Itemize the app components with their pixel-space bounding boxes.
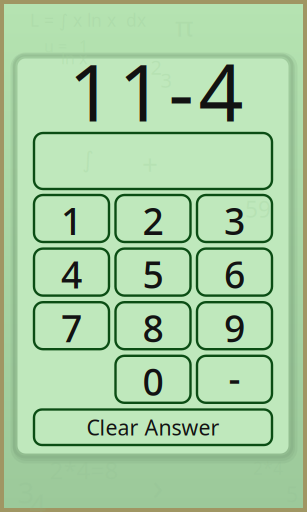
staticText: Clear Answer (86, 413, 219, 441)
button[interactable]: 0 (115, 356, 190, 403)
staticText: 2 (150, 54, 161, 80)
staticText: 8 (142, 303, 163, 352)
button[interactable]: 9 (197, 302, 272, 349)
button[interactable]: Clear Answer (34, 409, 272, 445)
button[interactable]: 3 (197, 195, 272, 242)
staticText: 2 (142, 196, 163, 245)
staticText: 6 (224, 249, 245, 299)
staticText: 9 (224, 303, 245, 352)
button[interactable]: 5 (115, 249, 190, 296)
button[interactable]: 7 (34, 302, 109, 349)
staticText: 0 (142, 356, 163, 406)
staticText: 1 (61, 196, 82, 245)
staticText: 2*4=8 (49, 454, 118, 486)
button[interactable]: 1 (34, 195, 109, 242)
staticText: 11-4 (68, 39, 243, 143)
staticText: 4 (61, 249, 82, 299)
staticText: 5 (142, 249, 163, 299)
staticText: 7 (61, 303, 82, 352)
staticText: › (152, 461, 164, 511)
button[interactable]: 4 (34, 249, 109, 296)
staticText: u = 1 (44, 35, 88, 57)
staticText: 3 (224, 196, 245, 245)
button[interactable]: 8 (115, 302, 190, 349)
staticText: 4 (29, 484, 46, 512)
button[interactable]: 6 (197, 249, 272, 296)
button[interactable]: - (197, 356, 272, 403)
staticText: 59 (245, 194, 271, 224)
staticText: 3 (17, 472, 34, 511)
staticText: - (228, 352, 240, 402)
staticText: ln x (61, 47, 87, 69)
button[interactable]: 2 (115, 195, 190, 242)
staticText: 2*4 (253, 456, 283, 479)
